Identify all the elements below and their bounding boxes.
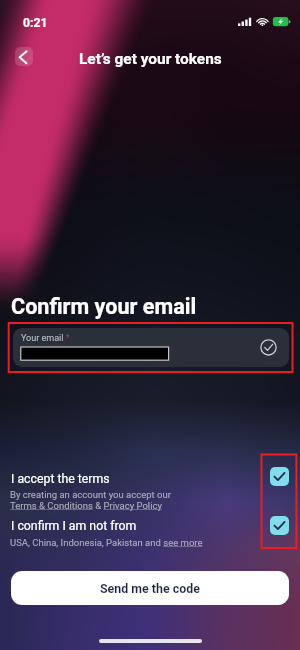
- staticText: 0:21: [23, 16, 48, 30]
- staticText: By creating an account you accept our: [10, 489, 171, 500]
- staticText: USA, China, Indonesia, Pakistan and see …: [10, 537, 203, 548]
- button[interactable]: Back: [15, 47, 33, 66]
- button[interactable]: Your email *: [13, 328, 289, 367]
- button[interactable]: Checked checkbox: [270, 516, 289, 535]
- staticText: I confirm I am not from: [11, 519, 137, 533]
- staticText: Your email *: [21, 333, 70, 344]
- button[interactable]: Checked checkbox: [270, 467, 289, 486]
- staticText: Send me the code: [100, 581, 200, 596]
- staticText: Terms & Conditions & Privacy Policy: [10, 500, 162, 511]
- staticText: Let’s get your tokens: [79, 50, 222, 68]
- button[interactable]: Send me the code: [11, 571, 289, 605]
- staticText: Confirm your email: [11, 294, 197, 319]
- staticText: I accept the terms: [11, 472, 110, 486]
